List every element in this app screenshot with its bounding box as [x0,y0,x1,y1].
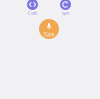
button[interactable]: Talk [39,19,59,39]
staticText: Code [28,10,37,16]
button[interactable]: Code [27,0,38,10]
button[interactable]: Sync [60,0,71,10]
staticText: Sync [61,10,69,16]
staticText: Talk [43,30,54,38]
